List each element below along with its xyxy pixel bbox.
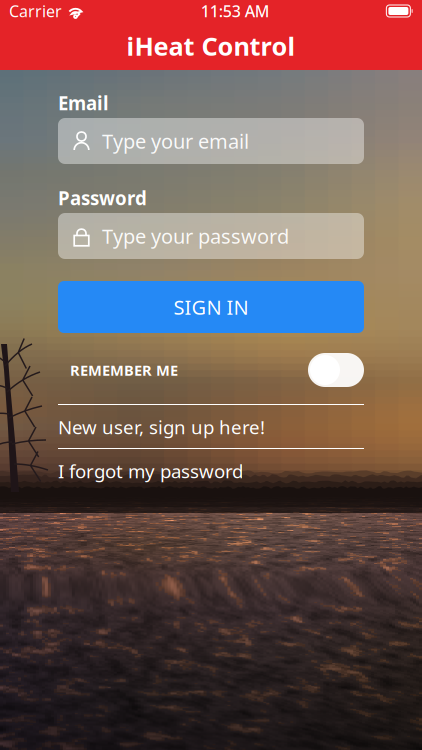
staticText: REMEMBER ME	[70, 360, 178, 380]
staticText: Type your password	[102, 223, 289, 249]
button[interactable]: New user, sign up here!	[58, 405, 364, 449]
staticText: Type your email	[102, 128, 249, 154]
button[interactable]: I forgot my password	[58, 449, 364, 493]
button[interactable]: Type your password	[58, 213, 364, 259]
button[interactable]: Type your email	[58, 118, 364, 164]
staticText: I forgot my password	[58, 459, 243, 483]
staticText: Email	[58, 91, 109, 115]
staticText: SIGN IN	[173, 294, 248, 320]
button[interactable]: SIGN IN	[58, 281, 364, 333]
staticText: New user, sign up here!	[58, 415, 265, 439]
staticText: iHeat Control	[126, 29, 295, 63]
button[interactable]: Remember me	[308, 353, 364, 387]
staticText: Carrier	[9, 0, 62, 22]
staticText: 11:53 AM	[201, 0, 270, 22]
staticText: Password	[58, 186, 147, 210]
